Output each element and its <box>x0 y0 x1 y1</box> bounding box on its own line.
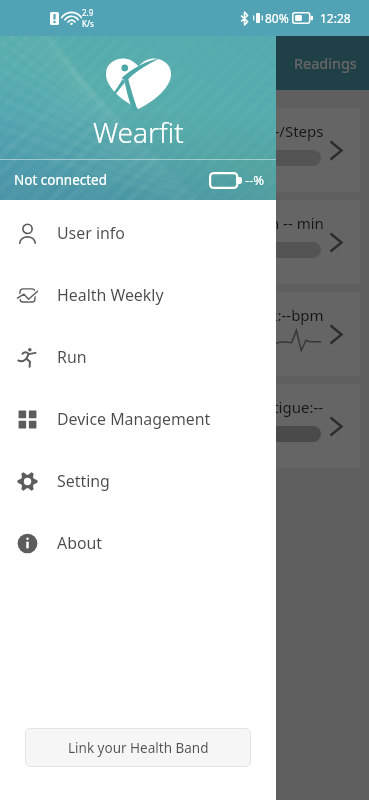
staticText: Sleep:--h -- min <box>218 213 324 233</box>
staticText: 12:28 <box>320 10 351 26</box>
staticText: 80% <box>265 10 289 26</box>
staticText: K/s <box>82 18 94 29</box>
staticText: --% <box>245 171 265 189</box>
button[interactable]: Link your Health Band <box>25 728 251 767</box>
button[interactable]: Run <box>0 326 276 388</box>
staticText: 2.9 <box>82 7 94 18</box>
staticText: Run <box>57 346 87 368</box>
button[interactable]: About <box>0 512 276 574</box>
staticText: Readings <box>294 53 357 73</box>
staticText: Setting <box>57 470 110 492</box>
button[interactable]: Device Management <box>0 388 276 450</box>
staticText: About <box>57 532 103 554</box>
staticText: Link your Health Band <box>68 739 209 757</box>
staticText: Not connected <box>14 171 108 189</box>
staticText: Device Management <box>57 408 211 430</box>
staticText: User info <box>57 222 125 244</box>
staticText: Today:--/Steps <box>224 121 324 141</box>
staticText: HR:--bpm <box>257 305 324 325</box>
button[interactable]: Health Weekly <box>0 264 276 326</box>
button[interactable]: Setting <box>0 450 276 512</box>
staticText: Health Weekly <box>57 284 164 306</box>
staticText: Wearfit <box>93 113 184 151</box>
button[interactable]: User info <box>0 202 276 264</box>
staticText: Fatigue:-- <box>257 397 324 417</box>
